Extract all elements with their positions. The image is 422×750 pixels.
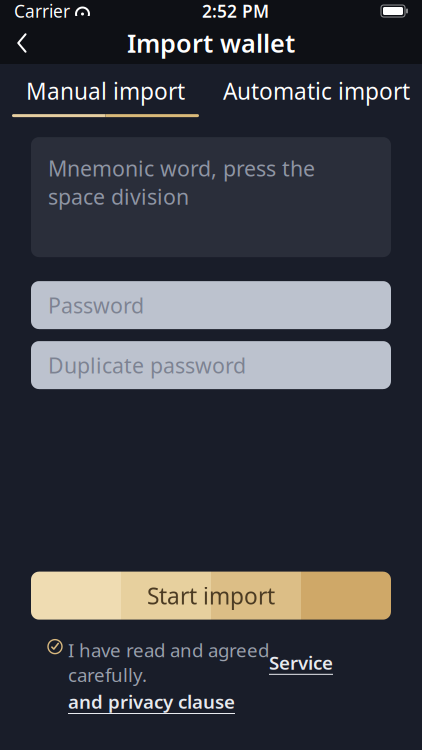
staticText: Import wallet <box>127 26 295 60</box>
button[interactable]: Start import <box>31 572 391 620</box>
staticText: Duplicate password <box>48 351 246 379</box>
staticText: Mnemonic word, press the space division <box>48 154 315 211</box>
staticText: and privacy clause <box>68 689 235 714</box>
staticText: Carrier <box>14 0 70 22</box>
button[interactable]: Back <box>0 22 44 64</box>
staticText: I have read and agreed carefully. <box>68 638 269 687</box>
button[interactable]: I have read and agreed carefully. <box>31 638 391 714</box>
staticText: Service <box>269 650 333 675</box>
staticText: Password <box>48 291 144 319</box>
staticText: 2:52 PM <box>202 0 269 22</box>
staticText: Start import <box>147 581 275 611</box>
button[interactable]: Manual import <box>0 64 211 117</box>
staticText: Manual import <box>26 76 185 106</box>
button[interactable]: Automatic import <box>211 64 422 117</box>
staticText: Automatic import <box>223 76 410 106</box>
